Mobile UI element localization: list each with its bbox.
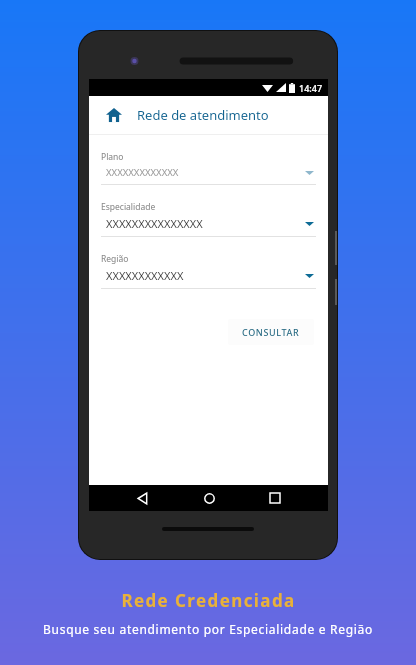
staticText: Região <box>101 253 129 265</box>
button[interactable]: Especialidade <box>101 201 316 237</box>
button[interactable]: CONSULTAR <box>228 319 314 345</box>
button[interactable]: Região <box>101 253 316 289</box>
staticText: XXXXXXXXXXXXXXX <box>106 216 203 231</box>
staticText: 14:47 <box>299 82 323 94</box>
staticText: XXXXXXXXXXXX <box>106 268 184 283</box>
button[interactable]: Plano <box>101 151 316 185</box>
button[interactable]: Home <box>196 485 222 511</box>
staticText: Rede Credenciada <box>121 589 296 612</box>
staticText: XXXXXXXXXXXXX <box>106 166 179 179</box>
button[interactable]: Back <box>129 485 155 511</box>
button[interactable]: Recents <box>262 485 288 511</box>
staticText: Plano <box>101 151 124 163</box>
staticText: Busque seu atendimento por Especialidade… <box>43 621 373 637</box>
staticText: CONSULTAR <box>242 326 300 338</box>
button[interactable]: Home <box>101 102 127 128</box>
staticText: Rede de atendimento <box>137 106 269 124</box>
staticText: Especialidade <box>101 201 156 213</box>
